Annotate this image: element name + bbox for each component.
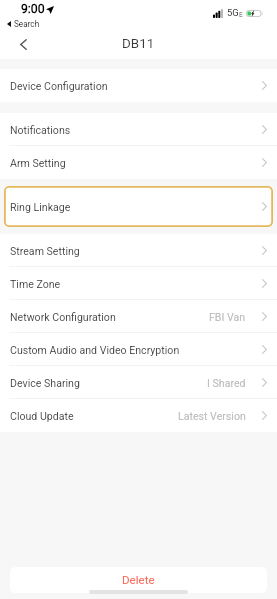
staticText: 9:00 xyxy=(21,2,45,16)
staticText: Ring Linkage xyxy=(10,201,71,213)
button[interactable]: Arm Setting xyxy=(0,146,277,179)
staticText: Cloud Update xyxy=(10,410,74,422)
button[interactable]: Time Zone xyxy=(0,267,277,300)
staticText: Delete xyxy=(122,573,155,587)
staticText: 5G xyxy=(227,7,239,18)
staticText: Search xyxy=(14,19,40,29)
staticText: DB11 xyxy=(122,36,155,52)
staticText: Latest Version xyxy=(178,410,246,422)
staticText: Custom Audio and Video Encryption xyxy=(10,344,180,356)
staticText: Notifications xyxy=(10,124,71,136)
staticText: Device Configuration xyxy=(10,80,108,92)
button[interactable]: Cloud Update xyxy=(0,399,277,432)
staticText: Arm Setting xyxy=(10,157,66,169)
button[interactable]: Custom Audio and Video Encryption xyxy=(0,333,277,366)
button[interactable]: Device Configuration xyxy=(0,69,277,102)
button[interactable]: Back xyxy=(0,29,40,59)
button[interactable]: Delete xyxy=(10,567,267,593)
button[interactable]: Ring Linkage xyxy=(4,186,273,227)
staticText: I Shared xyxy=(207,377,246,389)
staticText: FBI Van xyxy=(209,311,246,323)
staticText: Time Zone xyxy=(10,278,61,290)
staticText: Stream Setting xyxy=(10,245,80,257)
staticText: Network Configuration xyxy=(10,311,116,323)
button[interactable]: Stream Setting xyxy=(0,234,277,267)
staticText: Device Sharing xyxy=(10,377,80,389)
staticText: E xyxy=(239,11,243,19)
button[interactable]: Notifications xyxy=(0,113,277,146)
button[interactable]: Network Configuration xyxy=(0,300,277,333)
button[interactable]: Device Sharing xyxy=(0,366,277,399)
